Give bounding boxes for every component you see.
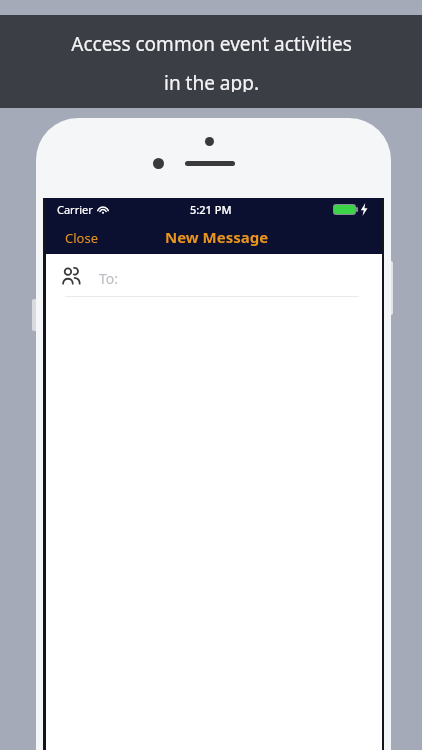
button[interactable]: Add recipient	[46, 254, 382, 300]
staticText: Access common event activities	[71, 31, 352, 57]
staticText: Carrier	[57, 202, 93, 217]
other: Add recipient	[61, 266, 82, 287]
staticText: Close	[65, 229, 98, 247]
button[interactable]: Close	[58, 225, 105, 251]
staticText: New Message	[165, 227, 269, 247]
staticText: To:	[99, 269, 119, 288]
staticText: 5:21 PM	[190, 202, 232, 217]
staticText: in the app.	[164, 70, 259, 92]
